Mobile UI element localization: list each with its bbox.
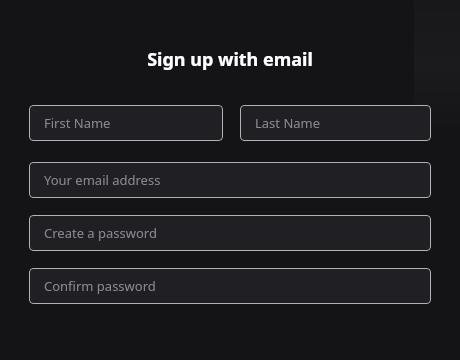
staticText: Sign up with email — [0, 47, 460, 72]
button[interactable]: Last Name — [240, 105, 431, 141]
staticText: Confirm password — [44, 277, 156, 295]
staticText: First Name — [44, 114, 111, 132]
staticText: Your email address — [44, 171, 161, 189]
staticText: Last Name — [255, 114, 321, 132]
button[interactable]: First Name — [29, 105, 223, 141]
button[interactable]: Confirm password — [29, 268, 431, 304]
button[interactable]: Create a password — [29, 215, 431, 251]
staticText: Create a password — [44, 224, 157, 242]
button[interactable]: Your email address — [29, 162, 431, 198]
